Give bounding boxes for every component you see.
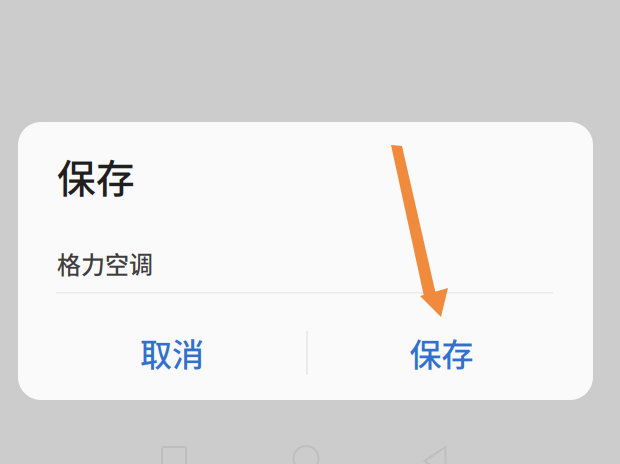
button[interactable]: Recents (146, 447, 202, 464)
button[interactable]: 保存 (308, 299, 593, 406)
button[interactable]: 取消 (18, 299, 306, 406)
staticText: 保存 (409, 329, 473, 376)
button[interactable]: Back (407, 446, 463, 464)
staticText: 取消 (140, 329, 204, 376)
staticText: 格力空调 (57, 246, 153, 281)
button[interactable]: Home (278, 446, 334, 464)
staticText: 保存 (57, 148, 135, 204)
